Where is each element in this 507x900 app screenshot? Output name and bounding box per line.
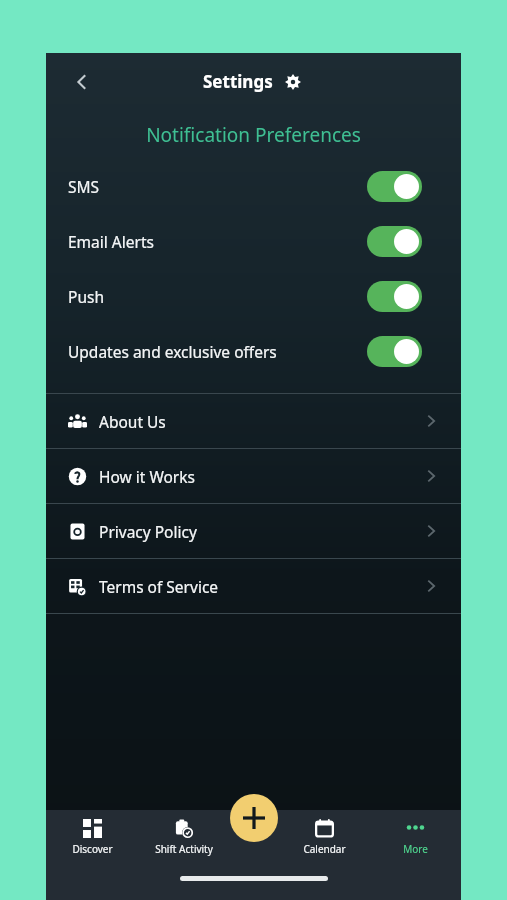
staticText: Terms of Service bbox=[99, 576, 423, 597]
staticText: More bbox=[403, 842, 428, 856]
button[interactable]: Discover bbox=[46, 815, 138, 860]
staticText: Email Alerts bbox=[68, 231, 367, 252]
staticText: Updates and exclusive offers bbox=[68, 341, 367, 362]
staticText: Calendar bbox=[303, 842, 346, 856]
button[interactable]: Email Alerts bbox=[46, 214, 461, 269]
staticText: How it Works bbox=[99, 466, 423, 487]
staticText: Privacy Policy bbox=[99, 521, 423, 542]
button[interactable]: SMS bbox=[46, 159, 461, 214]
staticText: Discover bbox=[72, 842, 113, 856]
staticText: Notification Preferences bbox=[146, 122, 361, 148]
button[interactable]: Privacy Policy bbox=[46, 504, 461, 558]
button[interactable]: Terms of Service bbox=[46, 559, 461, 613]
button[interactable]: Calendar bbox=[279, 815, 370, 860]
staticText: SMS bbox=[68, 176, 367, 197]
staticText: Shift Activity bbox=[155, 842, 213, 856]
button[interactable]: Shift Activity bbox=[138, 815, 229, 860]
button[interactable]: Settings bbox=[282, 71, 304, 93]
staticText: Settings bbox=[203, 70, 273, 93]
button[interactable]: About Us bbox=[46, 394, 461, 448]
button[interactable]: How it Works bbox=[46, 449, 461, 503]
staticText: Push bbox=[68, 286, 367, 307]
button[interactable]: Updates and exclusive offers bbox=[46, 324, 461, 379]
button[interactable]: Push bbox=[46, 269, 461, 324]
staticText: About Us bbox=[99, 411, 423, 432]
button[interactable]: Back bbox=[60, 60, 104, 104]
button[interactable]: Add bbox=[230, 794, 278, 842]
button[interactable]: More bbox=[370, 815, 461, 860]
